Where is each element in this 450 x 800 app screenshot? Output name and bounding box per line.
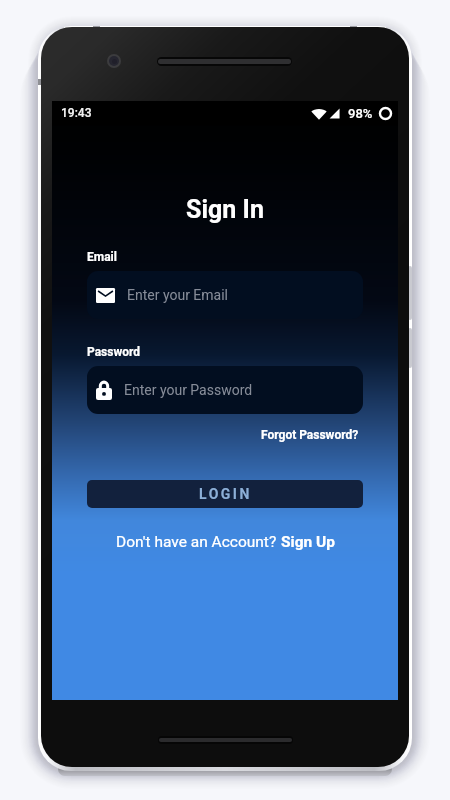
staticText: Enter your Password [124,382,253,398]
staticText: Sign In [52,195,398,224]
staticText: 19:43 [61,106,92,120]
staticText: Password [87,345,141,359]
button[interactable]: Enter your Password [87,366,363,414]
staticText: 98% [348,106,373,121]
staticText: Don't have an Account? [116,533,281,551]
button[interactable]: LOGIN [87,480,363,508]
staticText: Enter your Email [127,287,229,303]
button[interactable]: Forgot Password? [259,426,361,444]
button[interactable]: Sign Up [281,533,335,551]
staticText: Email [87,250,117,264]
staticText: Forgot Password? [261,428,359,442]
staticText: Sign Up [281,533,335,551]
button[interactable]: Enter your Email [87,271,363,319]
staticText: LOGIN [199,486,252,502]
